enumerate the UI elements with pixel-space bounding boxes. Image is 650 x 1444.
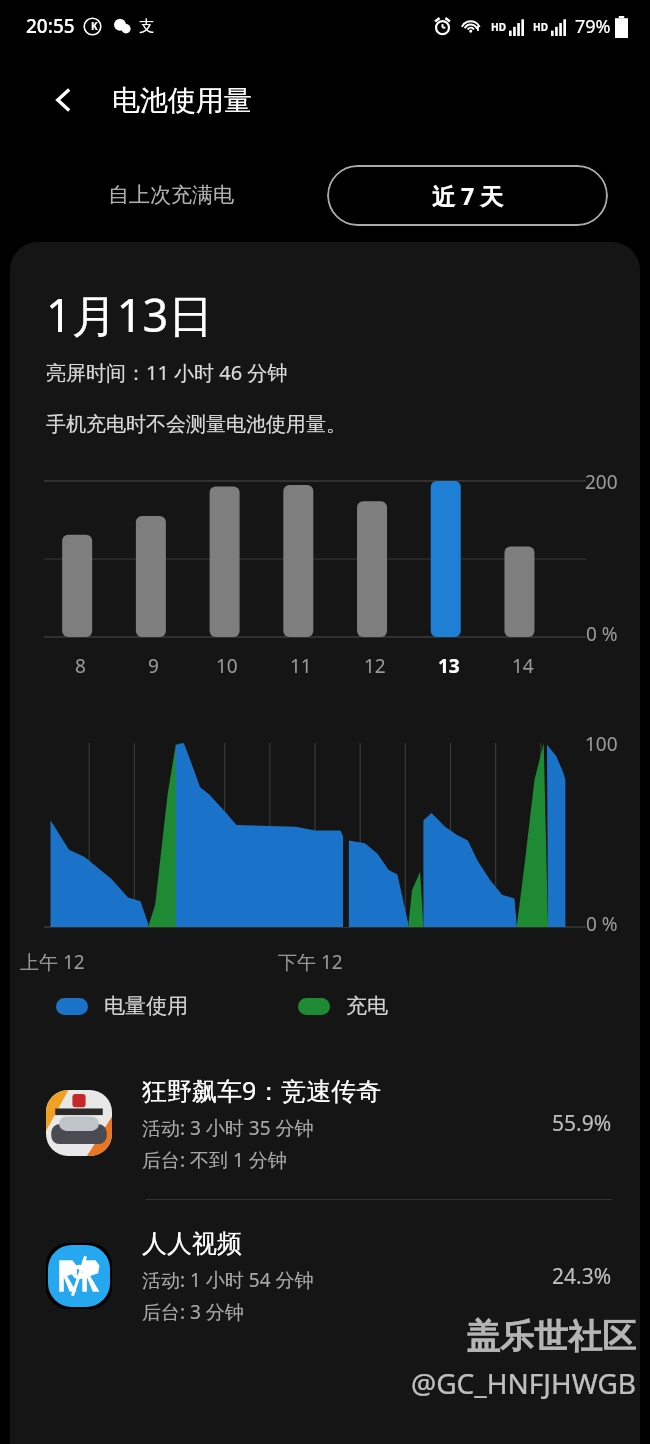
staticText: HD (533, 20, 548, 34)
button[interactable]: 自上次充满电 (92, 170, 250, 220)
staticText: 200 (585, 469, 618, 495)
staticText: 1月13日 (46, 284, 214, 345)
staticText: 下午 12 (278, 949, 343, 975)
staticText: 人人视频 (142, 1228, 242, 1259)
staticText: 12 (364, 653, 386, 679)
staticText: 79% (575, 14, 611, 39)
staticText: 支 (139, 17, 154, 36)
staticText: 后台: 不到 1 分钟 (142, 1147, 287, 1173)
staticText: 手机充电时不会测量电池使用量。 (46, 412, 346, 437)
staticText: 活动: 1 小时 54 分钟 (142, 1267, 314, 1293)
staticText: 电池使用量 (112, 83, 252, 118)
staticText: 亮屏时间：11 小时 46 分钟 (46, 359, 288, 386)
staticText: 10 (216, 653, 238, 679)
staticText: 0 % (586, 621, 618, 647)
button[interactable]: 近 7 天 (327, 165, 608, 226)
staticText: 活动: 3 小时 35 分钟 (142, 1115, 314, 1141)
staticText: 后台: 3 分钟 (142, 1299, 244, 1325)
staticText: 近 7 天 (432, 180, 504, 211)
staticText: K (91, 19, 98, 33)
staticText: 0 % (586, 911, 618, 937)
button[interactable]: 人人视频 (10, 1200, 640, 1352)
staticText: 充电 (346, 993, 388, 1019)
staticText: 20:55 (26, 13, 75, 39)
staticText: 11 (290, 653, 312, 679)
staticText: 13 (438, 653, 460, 679)
staticText: 电量使用 (104, 993, 188, 1019)
staticText: 55.9% (552, 1109, 612, 1138)
staticText: 上午 12 (20, 949, 85, 975)
button[interactable]: 返回 (38, 74, 90, 126)
staticText: @GC_HNFJHWGB (411, 1364, 636, 1402)
staticText: 自上次充满电 (108, 182, 234, 208)
staticText: 100 (585, 731, 618, 757)
staticText: 狂野飙车9：竞速传奇 (142, 1073, 382, 1107)
staticText: 8 (75, 653, 86, 679)
staticText: 24.3% (552, 1262, 612, 1291)
staticText: 盖乐世社区 (466, 1315, 636, 1358)
staticText: 9 (148, 653, 159, 679)
staticText: 14 (512, 653, 534, 679)
staticText: HD (491, 20, 506, 34)
button[interactable]: 狂野飙车9：竞速传奇 (10, 1047, 640, 1199)
